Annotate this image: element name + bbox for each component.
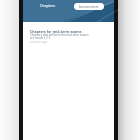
staticText: are inside 1 2 3 bbox=[30, 36, 51, 40]
staticText: Chapters for mid-term exams bbox=[30, 29, 82, 34]
staticText: Chapters that will be in the mid-term ex… bbox=[30, 33, 89, 37]
staticText: Chapters bbox=[40, 3, 56, 8]
button[interactable]: Announcement bbox=[74, 3, 104, 10]
staticText: Announcement bbox=[79, 5, 99, 9]
staticText: an hour ago bbox=[30, 40, 48, 44]
